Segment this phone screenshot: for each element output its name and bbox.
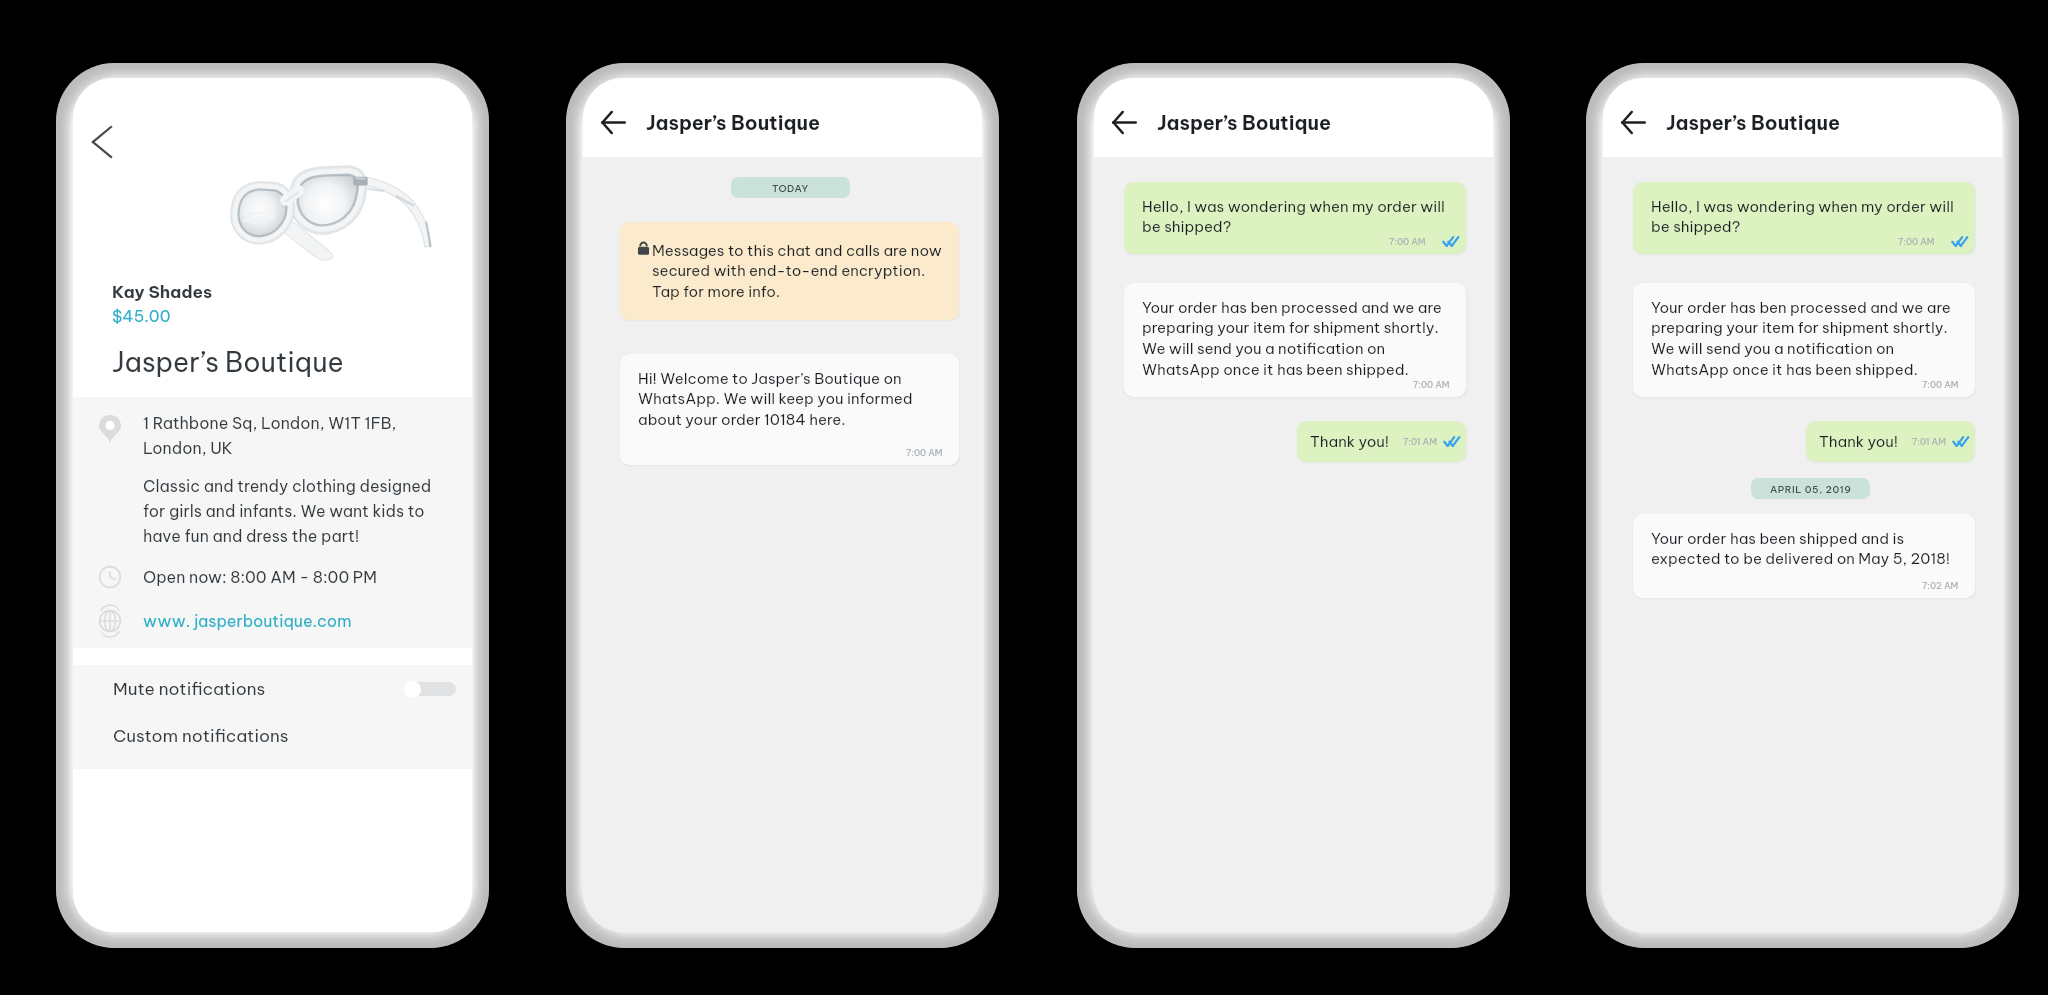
button[interactable]: Back	[593, 102, 633, 142]
button[interactable]: Hello, I was wondering when my order wil…	[1633, 182, 1975, 254]
button[interactable]: Hello, I was wondering when my order wil…	[1124, 182, 1466, 254]
staticText: APRIL 05, 2019	[1770, 483, 1852, 495]
staticText: 7:01 AM	[1403, 436, 1437, 447]
button[interactable]: Back	[82, 122, 122, 162]
staticText: 7:00 AM	[1389, 236, 1426, 247]
staticText: 7:00 AM	[1922, 379, 1959, 390]
staticText: Kay Shades	[112, 281, 213, 303]
button[interactable]: Your order has ben processed and we are …	[1633, 283, 1975, 397]
staticText: Jasper’s Boutique	[1157, 110, 1331, 135]
staticText: Classic and trendy clothing designed for…	[143, 476, 446, 546]
staticText: $45.00	[112, 306, 171, 326]
staticText: Your order has ben processed and we are …	[1651, 298, 1959, 379]
staticText: Mute notifications	[113, 678, 404, 700]
staticText: www. jasperboutique.com	[143, 611, 352, 631]
staticText: Thank you!	[1819, 432, 1899, 451]
staticText: Jasper’s Boutique	[646, 110, 820, 135]
button[interactable]: Messages to this chat and calls are now …	[620, 222, 959, 320]
staticText: 7:02 AM	[1922, 580, 1959, 591]
button[interactable]: Your order has ben processed and we are …	[1124, 283, 1466, 397]
staticText: TODAY	[772, 182, 809, 194]
button[interactable]: Thank you!	[1806, 421, 1975, 462]
button[interactable]: Kay Shades product photo	[223, 158, 448, 273]
staticText: 7:01 AM	[1912, 436, 1946, 447]
staticText: Messages to this chat and calls are now …	[652, 241, 943, 301]
button[interactable]: www. jasperboutique.com	[73, 610, 472, 632]
staticText: 7:00 AM	[906, 447, 943, 458]
staticText: 1 Rathbone Sq, London, W1T 1FB, London, …	[143, 413, 444, 458]
staticText: Thank you!	[1310, 432, 1390, 451]
button[interactable]: Mute notifications	[73, 665, 472, 713]
staticText: Jasper’s Boutique	[112, 345, 344, 379]
staticText: Open now: 8:00 AM - 8:00 PM	[143, 567, 377, 587]
staticText: Hello, I was wondering when my order wil…	[1651, 197, 1959, 236]
button[interactable]: APRIL 05, 2019	[1751, 478, 1870, 499]
staticText: Custom notifications	[113, 725, 289, 747]
button[interactable]: Back	[1613, 102, 1653, 142]
staticText: Hello, I was wondering when my order wil…	[1142, 197, 1450, 236]
staticText: Your order has been shipped and is expec…	[1651, 529, 1959, 568]
button[interactable]: Hi! Welcome to Jasper’s Boutique on What…	[620, 354, 959, 465]
button[interactable]: Your order has been shipped and is expec…	[1633, 514, 1975, 598]
button[interactable]: Custom notifications	[73, 713, 472, 758]
staticText: 7:00 AM	[1898, 236, 1935, 247]
staticText: Jasper’s Boutique	[1666, 110, 1840, 135]
button[interactable]: Thank you!	[1297, 421, 1466, 462]
button[interactable]: TODAY	[731, 177, 850, 198]
button[interactable]: Back	[1104, 102, 1144, 142]
staticText: Hi! Welcome to Jasper’s Boutique on What…	[638, 369, 943, 429]
staticText: 7:00 AM	[1413, 379, 1450, 390]
staticText: Your order has ben processed and we are …	[1142, 298, 1450, 379]
